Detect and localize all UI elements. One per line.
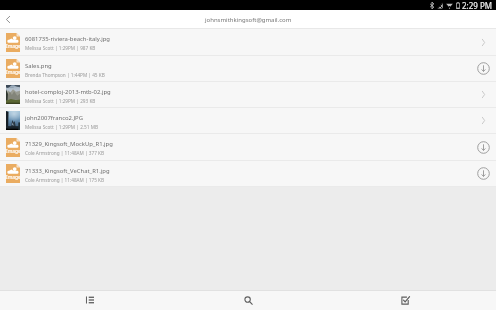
button[interactable]: Image (0, 56, 496, 82)
staticText: Cole Armstrong | 11:48AM | 377 KB (25, 150, 105, 156)
staticText: Melissa Scott | 1:29PM | 293 KB (25, 98, 96, 104)
button[interactable]: hotel-comploj-2013-mtb-02.jpg (0, 82, 496, 108)
button[interactable]: john2007franco2.JPG (0, 108, 496, 134)
staticText: Melissa Scott | 1:29PM | 987 KB (25, 45, 96, 51)
button[interactable]: Download (470, 56, 496, 81)
button[interactable]: Image (0, 29, 496, 56)
staticText: johnsmithkingsoft@gmail.com (205, 16, 292, 24)
staticText: 71329_Kingsoft_MockUp_R1.jpg (25, 140, 113, 148)
button[interactable]: Download (470, 161, 496, 186)
button[interactable]: Search (226, 290, 270, 310)
button[interactable]: Download (470, 134, 496, 160)
staticText: Image (6, 148, 20, 155)
button[interactable]: Image (0, 161, 496, 187)
staticText: Image (6, 69, 20, 76)
staticText: 71333_Kingsoft_VeChat_R1.jpg (25, 167, 110, 175)
staticText: 6081735-riviera-beach-italy.jpg (25, 35, 110, 43)
button[interactable]: Select (383, 290, 427, 310)
staticText: Melissa Scott | 1:29PM | 2.51 MB (25, 124, 98, 130)
button[interactable]: Back (0, 10, 16, 29)
button[interactable]: Open (470, 82, 496, 107)
staticText: Image (6, 43, 20, 50)
button[interactable]: Image (0, 134, 496, 161)
staticText: john2007franco2.JPG (25, 114, 83, 122)
staticText: hotel-comploj-2013-mtb-02.jpg (25, 88, 111, 96)
staticText: Brenda Thompson | 1:44PM | 45 KB (25, 72, 105, 78)
staticText: Sales.png (25, 62, 52, 70)
button[interactable]: Open (470, 108, 496, 133)
button[interactable]: List (68, 290, 112, 310)
button[interactable]: Open (470, 29, 496, 55)
staticText: 2:29 PM (462, 0, 493, 10)
staticText: Cole Armstrong | 11:48AM | 175 KB (25, 177, 105, 183)
staticText: Image (6, 174, 20, 181)
